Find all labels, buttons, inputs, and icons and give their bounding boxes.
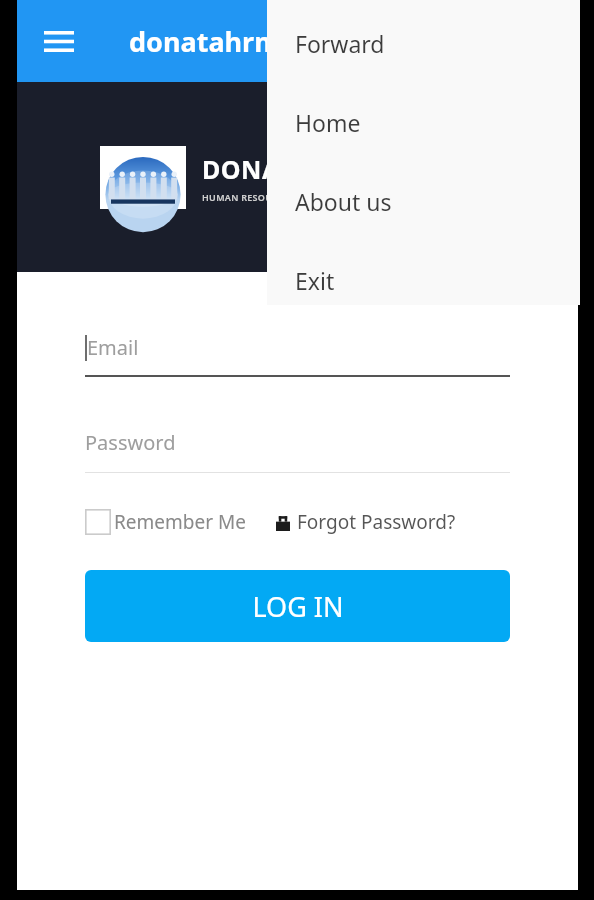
staticText: Password bbox=[85, 429, 176, 456]
staticText: Remember Me bbox=[114, 509, 246, 535]
button[interactable]: Forgot Password? bbox=[276, 509, 456, 535]
staticText: LOG IN bbox=[252, 588, 344, 625]
staticText: Email bbox=[87, 334, 139, 361]
staticText: Forgot Password? bbox=[297, 509, 456, 535]
staticText: DONATA bbox=[202, 152, 309, 186]
button[interactable]: LOG IN bbox=[85, 570, 510, 642]
button[interactable]: Open navigation drawer bbox=[33, 15, 85, 67]
button[interactable]: Home bbox=[267, 107, 580, 138]
button[interactable]: Email bbox=[85, 334, 510, 377]
staticText: About us bbox=[295, 186, 392, 217]
staticText: Forward bbox=[295, 28, 385, 59]
staticText: donatahrm bbox=[129, 23, 281, 60]
button[interactable]: Password bbox=[85, 429, 510, 473]
button[interactable]: Remember Me bbox=[85, 509, 246, 535]
staticText: HUMAN RESOURCE MANAGEM bbox=[202, 191, 342, 203]
staticText: Home bbox=[295, 107, 361, 138]
button[interactable]: About us bbox=[267, 186, 580, 217]
button[interactable]: Forward bbox=[267, 28, 580, 59]
button[interactable]: Exit bbox=[267, 265, 580, 296]
staticText: Exit bbox=[295, 265, 335, 296]
